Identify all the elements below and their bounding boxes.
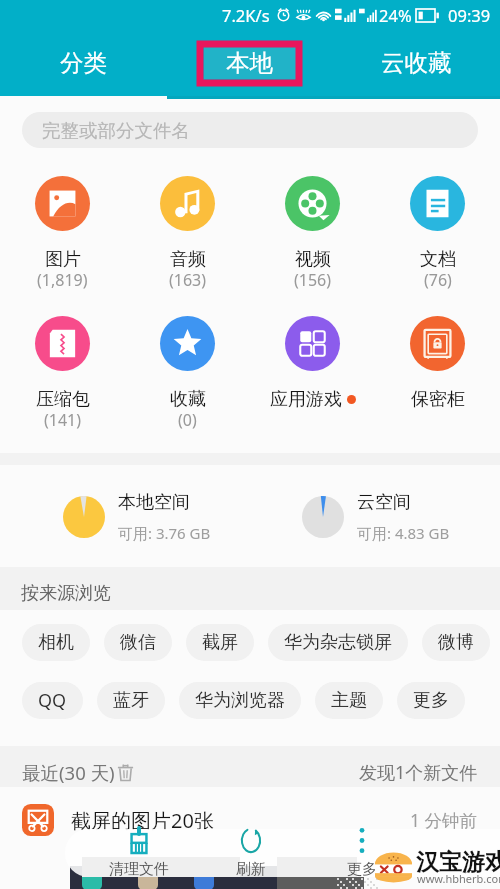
button[interactable]: 刷新 [195,824,306,879]
button[interactable]: 视频 [250,176,375,293]
staticText: 收藏 [170,388,206,411]
staticText: 视频 [295,248,331,271]
staticText: 华为杂志锁屏 [284,631,392,654]
staticText: 分类 [60,48,107,78]
button[interactable]: 本地 [166,30,333,96]
button[interactable]: 华为浏览器 [179,682,301,719]
button[interactable]: 清理文件 [83,824,195,879]
button[interactable]: 更多 [306,824,417,879]
staticText: 微信 [120,631,156,654]
staticText: (1,819) [37,269,88,291]
staticText: 云收藏 [381,48,452,78]
button[interactable]: 相机 [22,624,90,661]
button[interactable]: 收藏 [125,316,250,433]
button[interactable]: Clear recent files [116,763,135,782]
staticText: 汉宝游戏 [416,848,500,877]
button[interactable]: 微信 [104,624,172,661]
staticText: www.hbherb.com [417,871,500,886]
button[interactable]: 华为杂志锁屏 [268,624,408,661]
staticText: (141) [44,409,82,431]
button[interactable]: 微博 [422,624,490,661]
staticText: (163) [169,269,207,291]
staticText: 云空间 [357,491,411,514]
staticText: 09:39 [448,4,491,26]
staticText: 发现1个新文件 [359,760,478,785]
staticText: 清理文件 [109,860,169,879]
staticText: 更多 [347,860,377,879]
staticText: 蓝牙 [113,689,149,712]
staticText: 截屏 [202,631,238,654]
staticText: 完整或部分文件名 [42,119,190,142]
staticText: 刷新 [236,860,266,879]
button[interactable]: 云收藏 [333,30,500,96]
staticText: 截屏的图片20张 [71,807,214,834]
button[interactable]: 压缩包 [0,316,125,433]
button[interactable]: 图片 [0,176,125,293]
staticText: 更多 [413,689,449,712]
staticText: 可用: 3.76 GB [118,523,211,543]
staticText: 文档 [420,248,456,271]
staticText: 7.2K/s [222,4,270,26]
button[interactable]: 本地空间 [63,491,211,543]
button[interactable]: 保密柜 [375,316,500,411]
staticText: 保密柜 [411,388,465,411]
button[interactable]: 主题 [315,682,383,719]
button[interactable]: 完整或部分文件名 [22,112,478,148]
button[interactable]: 截屏 [186,624,254,661]
staticText: (0) [178,409,197,431]
staticText: 本地 [226,48,273,78]
button[interactable]: 蓝牙 [97,682,165,719]
staticText: 24% [379,4,412,26]
staticText: (76) [424,269,452,291]
staticText: (156) [294,269,332,291]
button[interactable]: 云空间 [302,491,450,543]
button[interactable]: 分类 [0,30,166,96]
staticText: 按来源浏览 [21,582,111,605]
button[interactable]: 更多 [397,682,465,719]
staticText: 微博 [438,631,474,654]
staticText: 最近(30 天) [22,760,115,785]
staticText: 音频 [170,248,206,271]
staticText: 应用游戏 [270,388,342,411]
button[interactable]: QQ [22,682,83,719]
staticText: QQ [38,688,67,713]
button[interactable]: 音频 [125,176,250,293]
staticText: 图片 [45,248,81,271]
button[interactable]: 应用游戏 [250,316,375,411]
button[interactable]: 截屏的图片20张 [22,793,500,847]
staticText: 1 分钟前 [410,808,478,832]
button[interactable]: 文档 [375,176,500,293]
staticText: 压缩包 [36,388,90,411]
staticText: 本地空间 [118,491,190,514]
staticText: 可用: 4.83 GB [357,523,450,543]
staticText: 主题 [331,689,367,712]
staticText: 相机 [38,631,74,654]
staticText: 华为浏览器 [195,689,285,712]
